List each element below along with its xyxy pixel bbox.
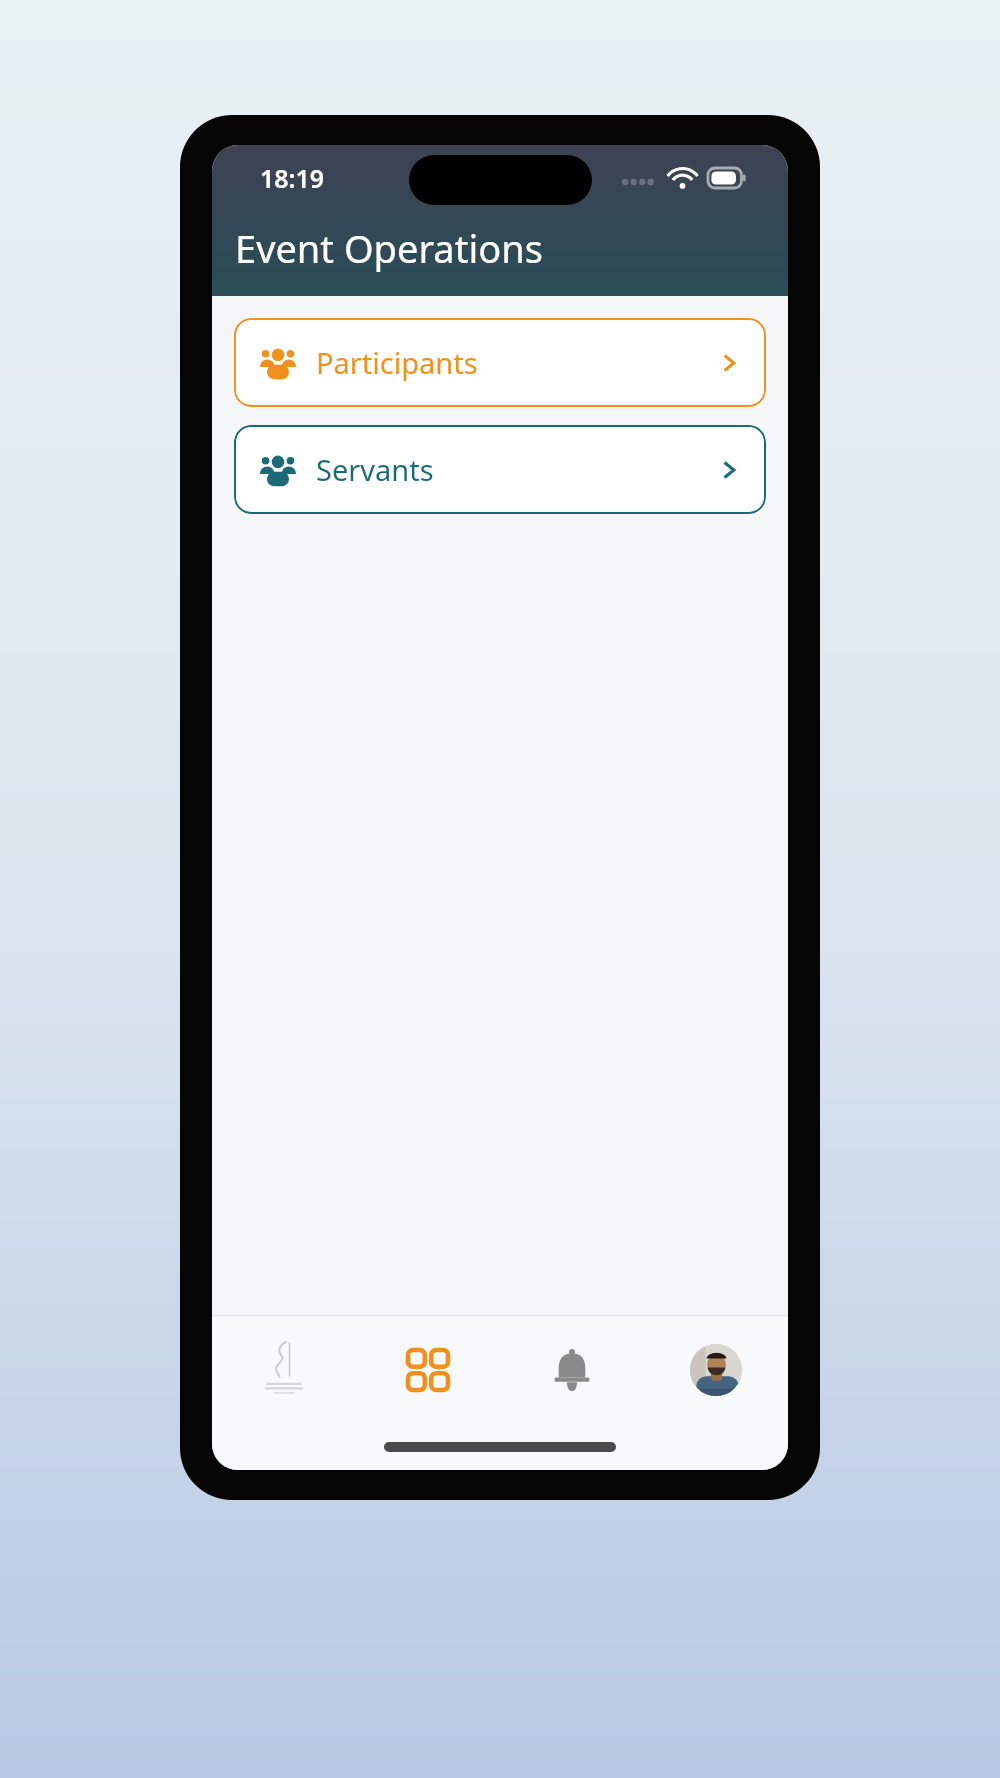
button[interactable]: Participants	[234, 318, 766, 407]
button[interactable]: Apps	[356, 1316, 500, 1424]
staticText: Event Operations	[235, 222, 543, 274]
button[interactable]: Home	[212, 1316, 356, 1424]
button[interactable]: Profile	[644, 1316, 788, 1424]
staticText: 18:19	[260, 161, 325, 195]
staticText: Servants	[316, 450, 434, 489]
button[interactable]: Servants	[234, 425, 766, 514]
button[interactable]: Notifications	[500, 1316, 644, 1424]
staticText: Participants	[316, 343, 478, 382]
